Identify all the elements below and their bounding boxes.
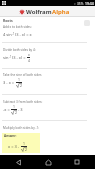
staticText: Add x to both sides:	[3, 25, 32, 29]
staticText: Subtract 3 from both sides:	[3, 100, 43, 104]
staticText: 2	[15, 110, 17, 115]
staticText: - 3	[17, 107, 23, 112]
button[interactable]: Answer:	[2, 133, 40, 153]
staticText: 35%	[77, 2, 84, 6]
staticText: 1	[13, 104, 15, 109]
button[interactable]: Home	[37, 155, 59, 169]
staticText: (3 - x) = x	[15, 32, 32, 37]
staticText: (3 - x) =	[12, 55, 27, 60]
staticText: 4	[28, 58, 30, 63]
staticText: 4 sin	[3, 32, 12, 37]
button[interactable]: Back	[7, 155, 29, 169]
button[interactable]: WolframAlpha home	[19, 8, 70, 16]
staticText: Divide both sides by 4:	[3, 48, 36, 52]
staticText: -1	[12, 32, 15, 36]
staticText: Alpha	[52, 8, 70, 16]
staticText: Multiply both sides by -1:	[3, 126, 40, 130]
staticText: Wolfram	[26, 8, 52, 16]
staticText: Answer:	[4, 134, 17, 138]
staticText: Roots	[3, 18, 13, 23]
staticText: 1	[23, 141, 25, 146]
button[interactable]: More options	[84, 20, 90, 26]
staticText: -1	[9, 55, 12, 59]
staticText: Take the sine of both sides	[3, 73, 42, 77]
staticText: -x =	[3, 107, 11, 112]
staticText: sin	[3, 55, 9, 60]
button[interactable]: Recent apps	[66, 155, 88, 169]
staticText: 19:34	[85, 1, 94, 6]
staticText: 2	[25, 147, 27, 152]
staticText: x = 3 -	[8, 144, 21, 149]
staticText: 3 - x =	[3, 80, 16, 85]
staticText: 2	[20, 83, 22, 88]
staticText: 1	[18, 77, 20, 82]
staticText: x	[28, 52, 30, 57]
